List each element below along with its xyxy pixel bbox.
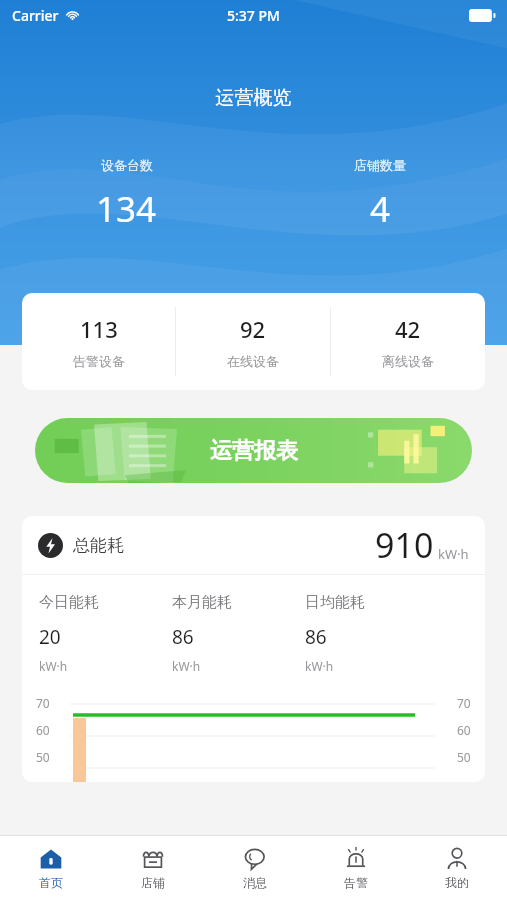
- staticText: 60: [457, 722, 471, 738]
- button[interactable]: 首页: [0, 836, 102, 900]
- staticText: 86: [305, 624, 327, 650]
- staticText: 运营概览: [0, 86, 507, 110]
- staticText: 70: [457, 695, 471, 711]
- button[interactable]: 店铺: [102, 836, 204, 900]
- staticText: 设备台数: [101, 157, 153, 173]
- button[interactable]: 告警: [305, 836, 406, 900]
- staticText: 113: [80, 314, 118, 344]
- staticText: kW·h: [305, 658, 334, 674]
- staticText: 910: [375, 522, 434, 568]
- staticText: 店铺数量: [354, 157, 406, 173]
- staticText: 运营报表: [210, 437, 298, 465]
- button[interactable]: 113: [22, 293, 175, 390]
- staticText: 在线设备: [227, 353, 279, 369]
- staticText: 42: [395, 314, 421, 344]
- staticText: 20: [39, 624, 61, 650]
- button[interactable]: 消息: [204, 836, 305, 900]
- button[interactable]: 运营报表: [35, 418, 472, 483]
- staticText: 我的: [445, 875, 469, 890]
- staticText: 50: [36, 749, 50, 765]
- staticText: 告警: [344, 875, 368, 890]
- staticText: 离线设备: [382, 353, 434, 369]
- staticText: 今日能耗: [39, 593, 99, 612]
- button[interactable]: 92: [176, 293, 330, 390]
- staticText: 日均能耗: [305, 593, 365, 612]
- staticText: Carrier: [12, 6, 59, 25]
- staticText: kW·h: [39, 658, 68, 674]
- staticText: 92: [240, 314, 266, 344]
- staticText: 60: [36, 722, 50, 738]
- button[interactable]: 42: [331, 293, 485, 390]
- button[interactable]: 我的: [406, 836, 507, 900]
- staticText: 4: [370, 185, 391, 233]
- staticText: 70: [36, 695, 50, 711]
- staticText: 134: [96, 185, 157, 233]
- staticText: 告警设备: [73, 353, 125, 369]
- staticText: 店铺: [141, 875, 165, 890]
- staticText: 本月能耗: [172, 593, 232, 612]
- staticText: 86: [172, 624, 194, 650]
- staticText: 首页: [39, 875, 63, 890]
- staticText: 50: [457, 749, 471, 765]
- staticText: kW·h: [438, 545, 469, 563]
- staticText: kW·h: [172, 658, 201, 674]
- staticText: 消息: [243, 875, 267, 890]
- staticText: 5:37 PM: [227, 6, 280, 25]
- staticText: 总能耗: [73, 535, 124, 556]
